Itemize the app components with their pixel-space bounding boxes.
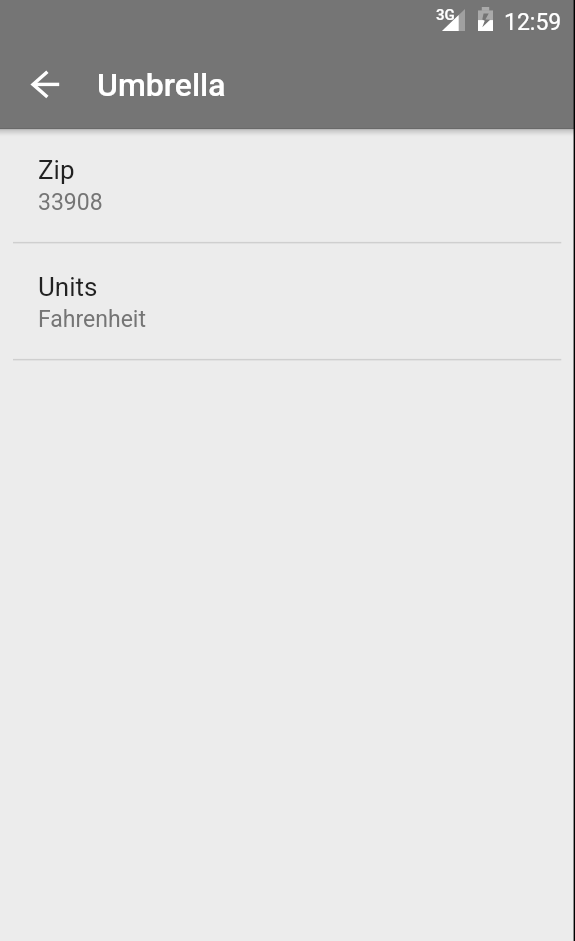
button[interactable]: Navigate up [12, 51, 80, 119]
staticText: 3G [436, 6, 455, 24]
staticText: 33908 [38, 189, 103, 216]
staticText: Zip [38, 155, 75, 185]
button[interactable]: Zip [0, 127, 575, 244]
staticText: 12:59 [504, 9, 562, 36]
button[interactable]: Units [0, 244, 575, 361]
staticText: Units [38, 272, 98, 302]
staticText: Umbrella [97, 66, 226, 104]
staticText: Fahrenheit [38, 306, 146, 333]
